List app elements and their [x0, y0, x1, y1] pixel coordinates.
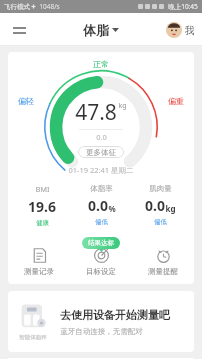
staticText: 47.8	[75, 98, 117, 127]
button[interactable]: 我	[166, 22, 195, 38]
staticText: 偏轻	[18, 96, 34, 106]
button[interactable]: 肌肉量	[131, 184, 190, 226]
staticText: 1048/s	[39, 2, 60, 11]
staticText: 晚上10:45	[168, 2, 198, 11]
staticText: 我	[185, 24, 195, 37]
button[interactable]: Menu	[8, 19, 30, 41]
button[interactable]: 体脂	[83, 22, 119, 38]
button[interactable]: 测量提醒	[132, 248, 194, 276]
button[interactable]: 测量记录	[8, 248, 70, 276]
staticText: 肌肉量	[149, 184, 172, 193]
staticText: 测量记录	[24, 267, 54, 276]
staticText: 智能体脂秤	[19, 334, 47, 341]
staticText: 0.0	[145, 196, 165, 215]
staticText: 体脂	[83, 22, 109, 38]
staticText: 蓝牙自动连接，无需配对	[60, 327, 143, 336]
staticText: 19.6	[28, 197, 56, 216]
button[interactable]: 智能体脂秤	[8, 291, 194, 352]
button[interactable]: BMI	[12, 184, 72, 227]
staticText: 目标设定	[86, 267, 116, 276]
staticText: 结果达标	[88, 239, 114, 247]
staticText: 健康	[36, 219, 49, 227]
staticText: 偏低	[154, 218, 167, 226]
staticText: 0.0	[88, 196, 108, 215]
staticText: 正常	[93, 59, 109, 69]
staticText: 体脂率	[90, 184, 113, 193]
staticText: 去使用设备开始测量吧	[60, 308, 170, 322]
staticText: 测量提醒	[148, 267, 178, 276]
staticText: 飞行模式	[4, 3, 30, 11]
staticText: 0.0	[96, 132, 107, 142]
staticText: kg	[165, 203, 176, 214]
staticText: %	[108, 203, 116, 214]
button[interactable]: 体脂率	[72, 184, 131, 226]
staticText: BMI	[35, 184, 50, 194]
staticText: 偏重	[168, 96, 184, 106]
button[interactable]: 目标设定	[70, 248, 132, 276]
staticText: 更多体征	[86, 148, 116, 156]
button[interactable]: 更多体征	[78, 146, 124, 158]
staticText: 01-19 22:41 星期二	[68, 165, 134, 175]
staticText: 偏低	[95, 218, 108, 226]
staticText: kg	[118, 101, 127, 111]
